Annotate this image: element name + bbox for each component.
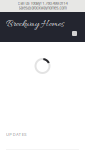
staticText: UPDATES [6, 132, 27, 137]
button[interactable]: Call us Today! 1.780.499.0114 [17, 1, 67, 6]
button[interactable]: sales@brockwayhomes.com [18, 6, 66, 10]
staticText: Brockway Homes [6, 18, 64, 30]
button[interactable]: Menu [72, 31, 77, 36]
staticText: sales@brockwayhomes.com [18, 6, 66, 10]
staticText: Call us Today! 1.780.499.0114 [17, 1, 67, 6]
